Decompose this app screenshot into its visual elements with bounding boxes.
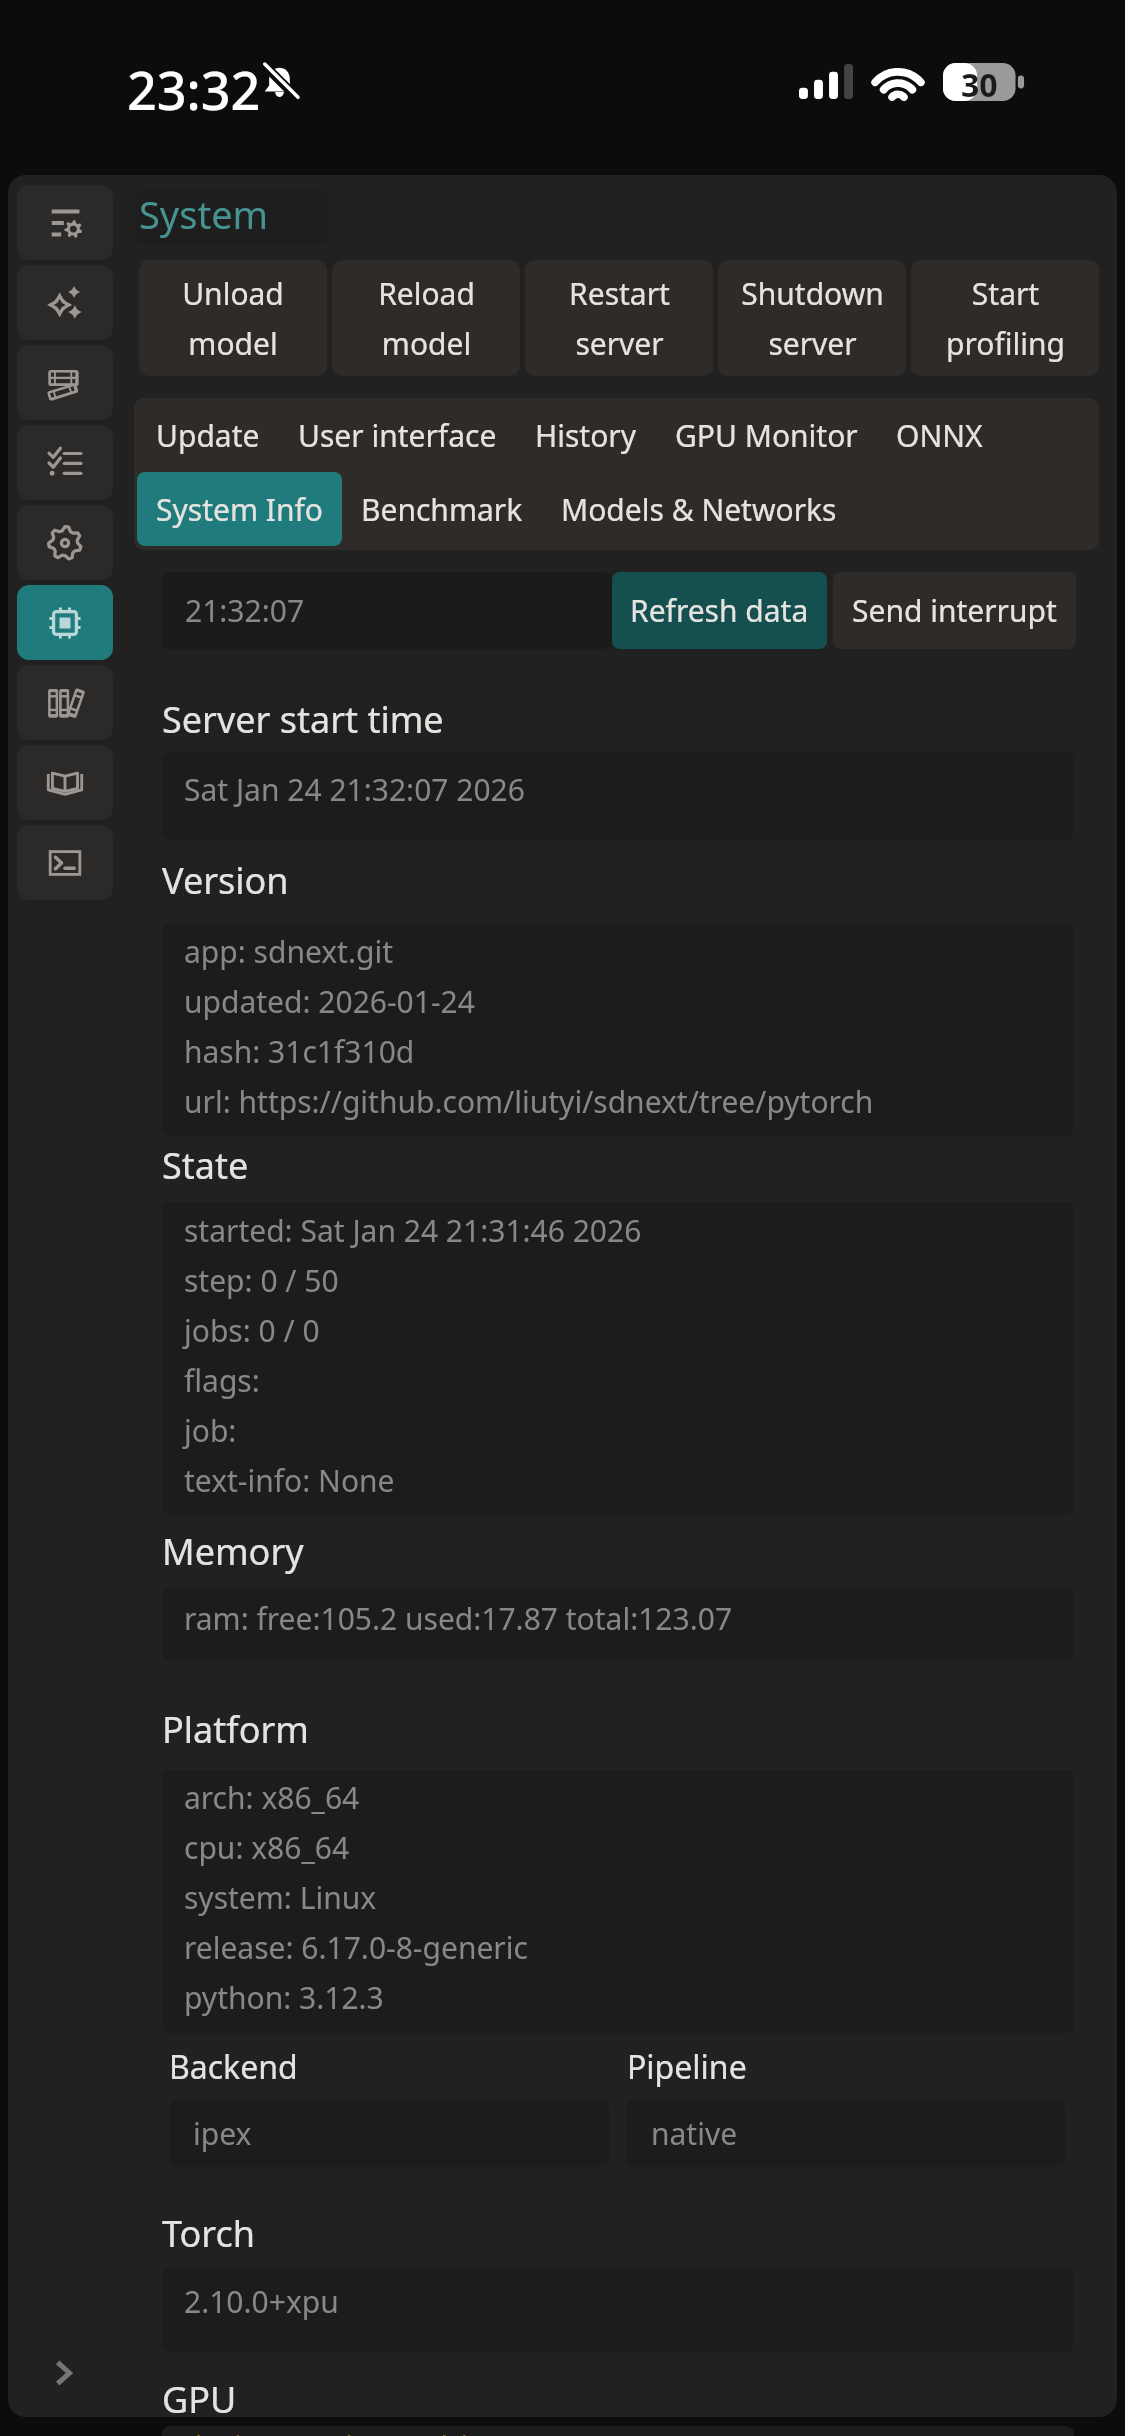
staticText: ipex [193, 2113, 252, 2154]
staticText: Memory [162, 1527, 304, 1576]
button[interactable]: GPU Monitor [656, 398, 877, 472]
staticText: Backend [169, 2045, 298, 2089]
staticText: Pipeline [627, 2045, 747, 2089]
button[interactable]: History [516, 398, 656, 472]
staticText: System [139, 188, 269, 240]
staticText: Benchmark [361, 489, 523, 530]
staticText: Start profiling [946, 273, 1065, 364]
button[interactable]: Console [17, 825, 113, 900]
staticText: Restart server [569, 273, 670, 364]
button[interactable]: native [627, 2100, 1065, 2167]
button[interactable]: ONNX [877, 398, 1002, 472]
button[interactable]: Control [17, 345, 113, 420]
staticText: User interface [298, 415, 497, 456]
button[interactable]: Send interrupt [833, 572, 1076, 649]
staticText: History [535, 415, 637, 456]
staticText: Reload model [378, 273, 475, 364]
button[interactable]: Restart server [525, 260, 713, 376]
staticText: app: sdnext.git updated: 2026-01-24 hash… [184, 931, 874, 1122]
staticText: Server start time [162, 695, 444, 744]
staticText: arch: x86_64 cpu: x86_64 system: Linux r… [184, 1777, 528, 2018]
button[interactable]: Unload model [139, 260, 327, 376]
staticText: Sat Jan 24 21:32:07 2026 [184, 769, 525, 810]
button[interactable]: System [17, 585, 113, 660]
staticText: System Info [156, 489, 323, 530]
button[interactable]: Settings [17, 505, 113, 580]
staticText: 2.10.0+xpu [184, 2281, 339, 2322]
staticText: Version [162, 856, 289, 905]
staticText: 23:32 [127, 54, 261, 125]
button[interactable] [136, 189, 327, 245]
staticText: Update [156, 415, 260, 456]
staticText: Models & Networks [561, 489, 837, 530]
button[interactable]: Benchmark [342, 472, 542, 546]
staticText: ONNX [896, 415, 983, 456]
staticText: 30 [961, 63, 998, 101]
button[interactable]: 21:32:07 [161, 572, 612, 649]
button[interactable]: Models [17, 665, 113, 740]
staticText: GPU [162, 2375, 237, 2417]
staticText: GPU Monitor [675, 415, 858, 456]
button[interactable]: Update [137, 398, 279, 472]
staticText: Refresh data [630, 590, 809, 631]
staticText: Unload model [182, 273, 284, 364]
button[interactable]: Expand sidebar [44, 2353, 84, 2393]
button[interactable]: Text to image [17, 185, 113, 260]
staticText: native [651, 2113, 738, 2154]
staticText: ram: free:105.2 used:17.87 total:123.07 [184, 1598, 733, 1639]
staticText: device: Intel Arc driver: 1.3.0 memory: … [184, 2426, 868, 2436]
staticText: Torch [162, 2209, 255, 2258]
staticText: Send interrupt [852, 590, 1057, 631]
button[interactable]: Models & Networks [542, 472, 856, 546]
button[interactable]: Shutdown server [718, 260, 906, 376]
button[interactable]: ipex [169, 2100, 609, 2167]
button[interactable]: Image to image [17, 265, 113, 340]
staticText: State [162, 1141, 249, 1190]
staticText: started: Sat Jan 24 21:31:46 2026 step: … [184, 1210, 642, 1501]
button[interactable]: Reload model [332, 260, 520, 376]
staticText: Shutdown server [741, 273, 884, 364]
button[interactable]: Start profiling [911, 260, 1099, 376]
button[interactable]: Refresh data [612, 572, 827, 649]
staticText: Platform [162, 1705, 309, 1754]
staticText: 21:32:07 [185, 590, 305, 631]
button[interactable]: Process [17, 425, 113, 500]
button[interactable]: System Info [137, 472, 342, 546]
button[interactable]: Docs [17, 745, 113, 820]
button[interactable]: User interface [279, 398, 516, 472]
